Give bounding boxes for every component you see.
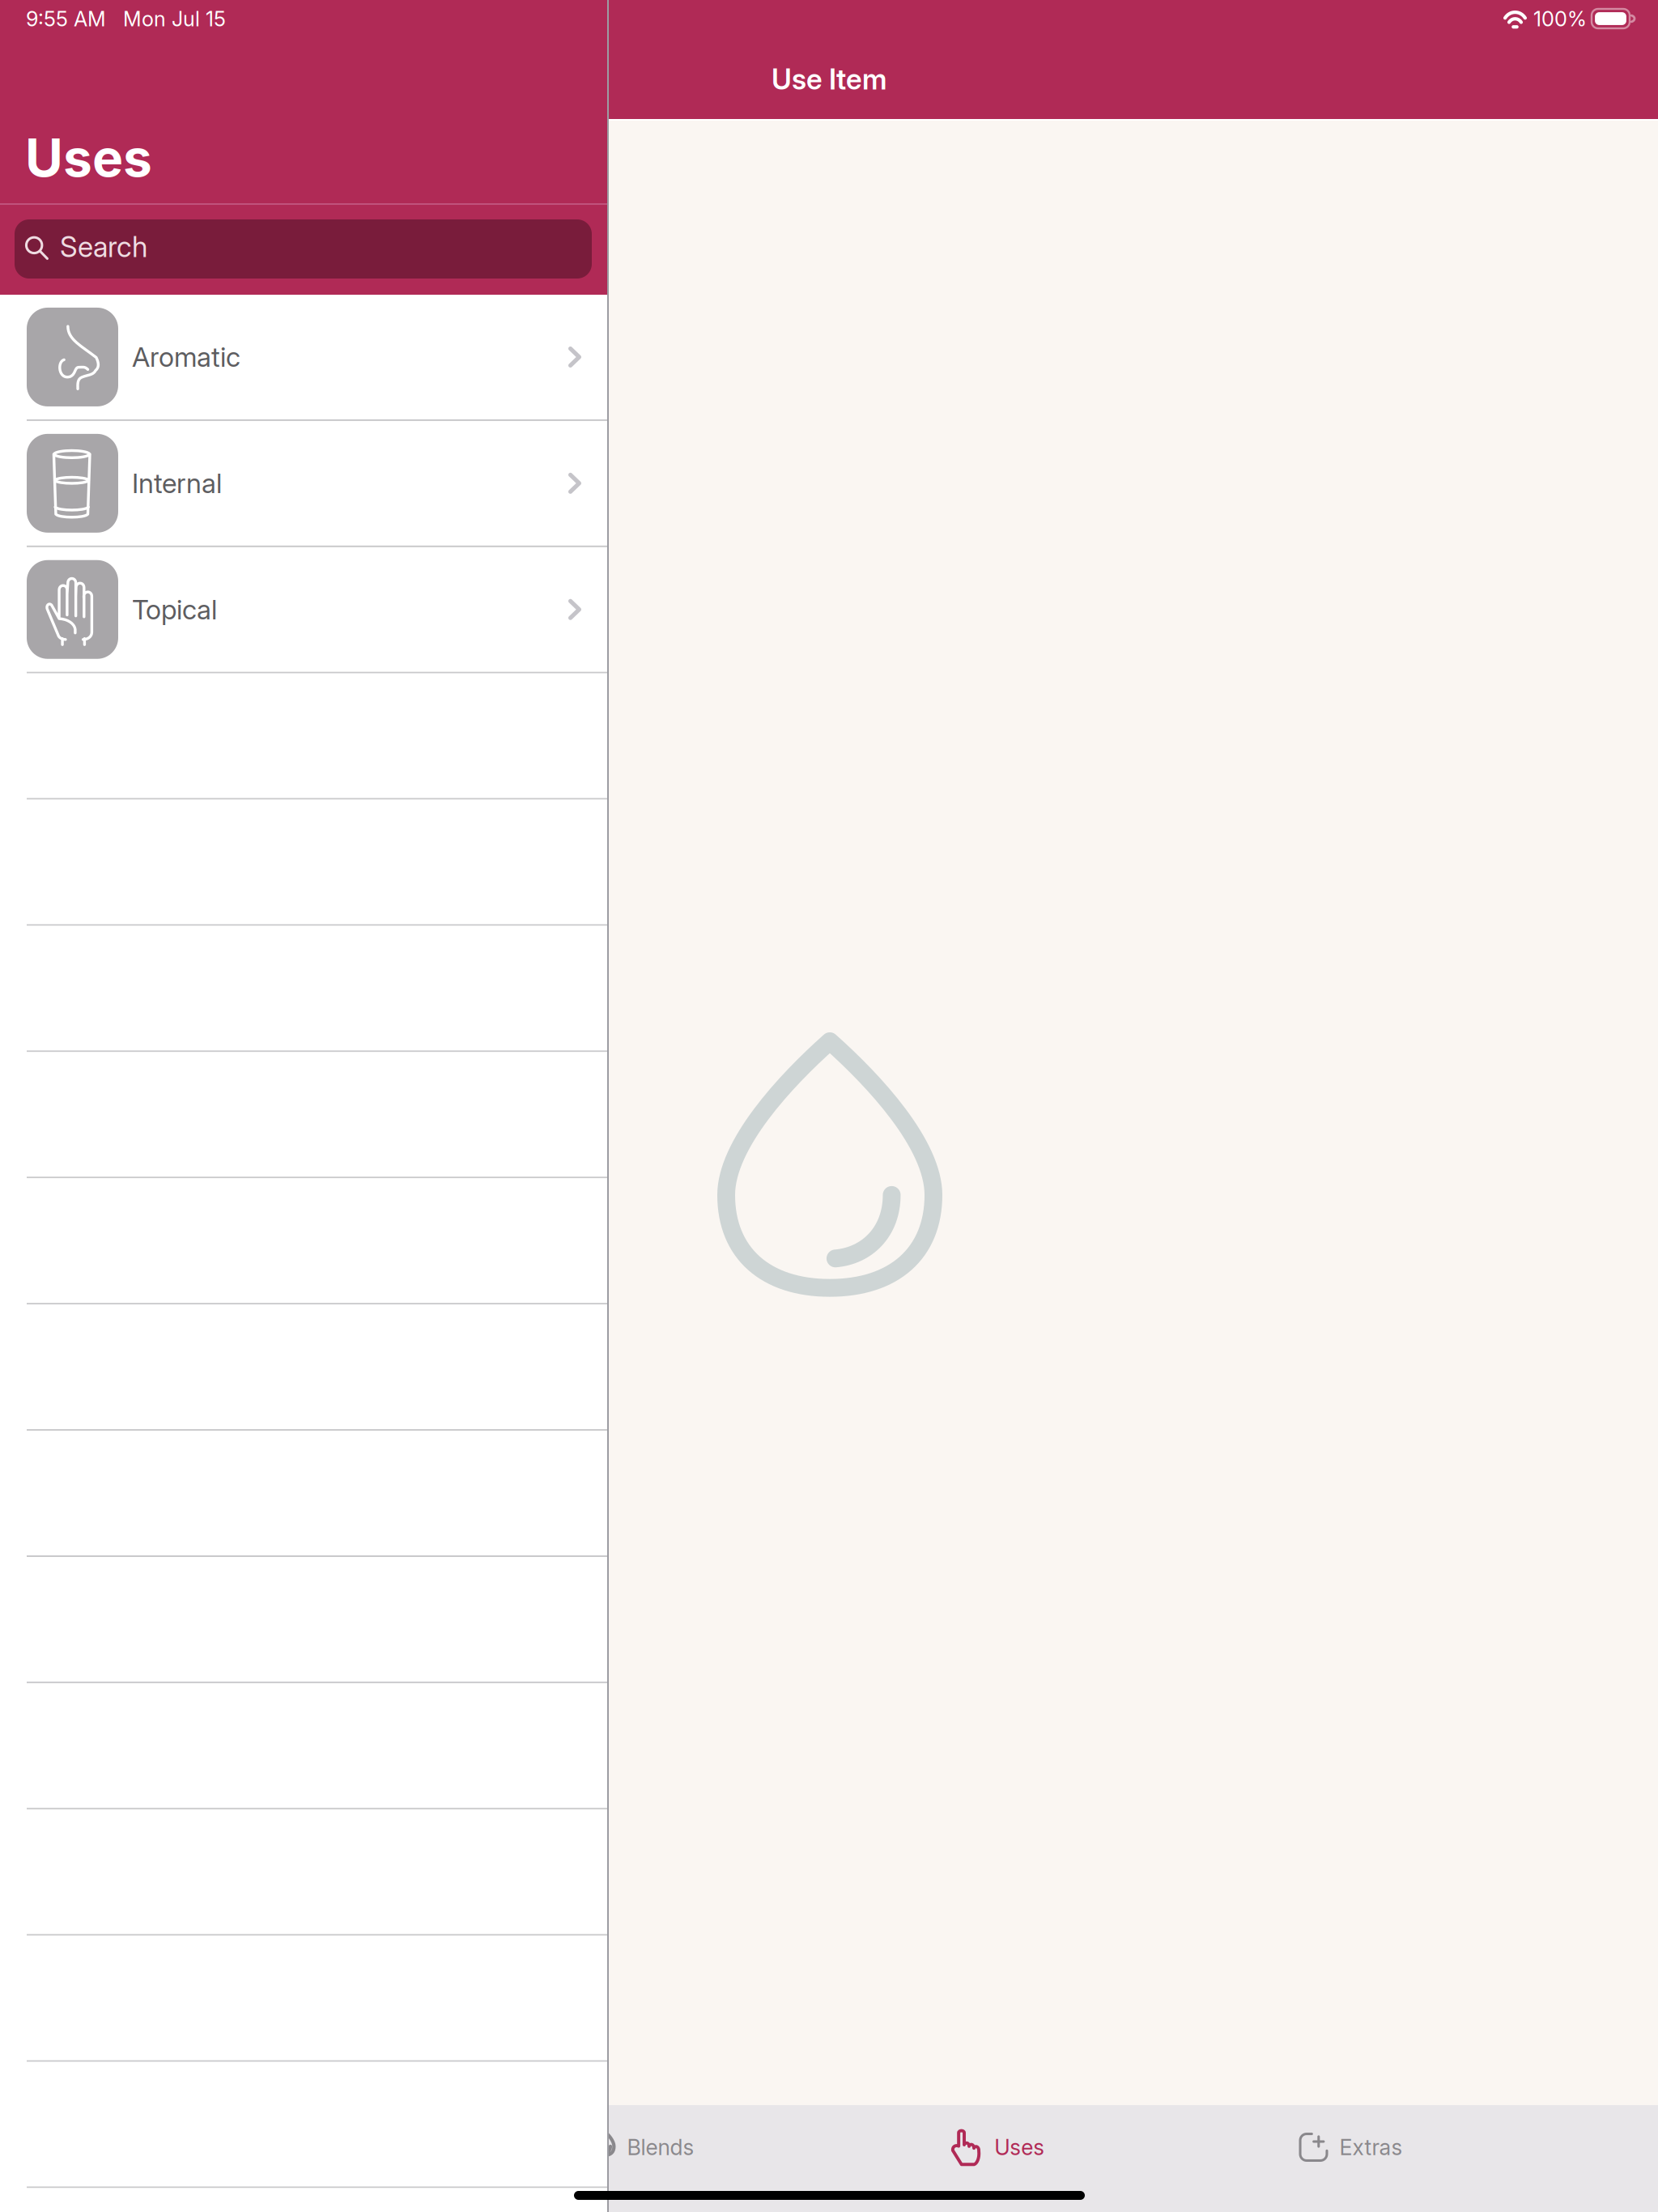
staticText: Blends — [627, 2134, 694, 2160]
staticText: Uses — [25, 126, 152, 189]
button[interactable]: Extras — [1174, 2115, 1528, 2180]
button[interactable]: Use Item — [756, 62, 902, 97]
button[interactable]: Aromatic — [0, 295, 607, 419]
staticText: Aromatic — [132, 341, 240, 373]
staticText: Use Item — [772, 62, 886, 96]
staticText: 9:55 AM Mon Jul 15 — [26, 6, 226, 31]
staticText: 100% — [1533, 6, 1587, 31]
staticText: Internal — [132, 467, 222, 500]
button[interactable]: Search — [15, 219, 592, 279]
button[interactable]: Uses — [820, 2115, 1174, 2180]
staticText: Search — [60, 230, 147, 264]
button[interactable]: Internal — [0, 421, 607, 546]
button[interactable]: Topical — [0, 547, 607, 672]
staticText: Uses — [994, 2134, 1045, 2160]
staticText: Topical — [132, 593, 217, 626]
staticText: Extras — [1339, 2134, 1403, 2160]
button[interactable]: Blends — [466, 2115, 820, 2180]
